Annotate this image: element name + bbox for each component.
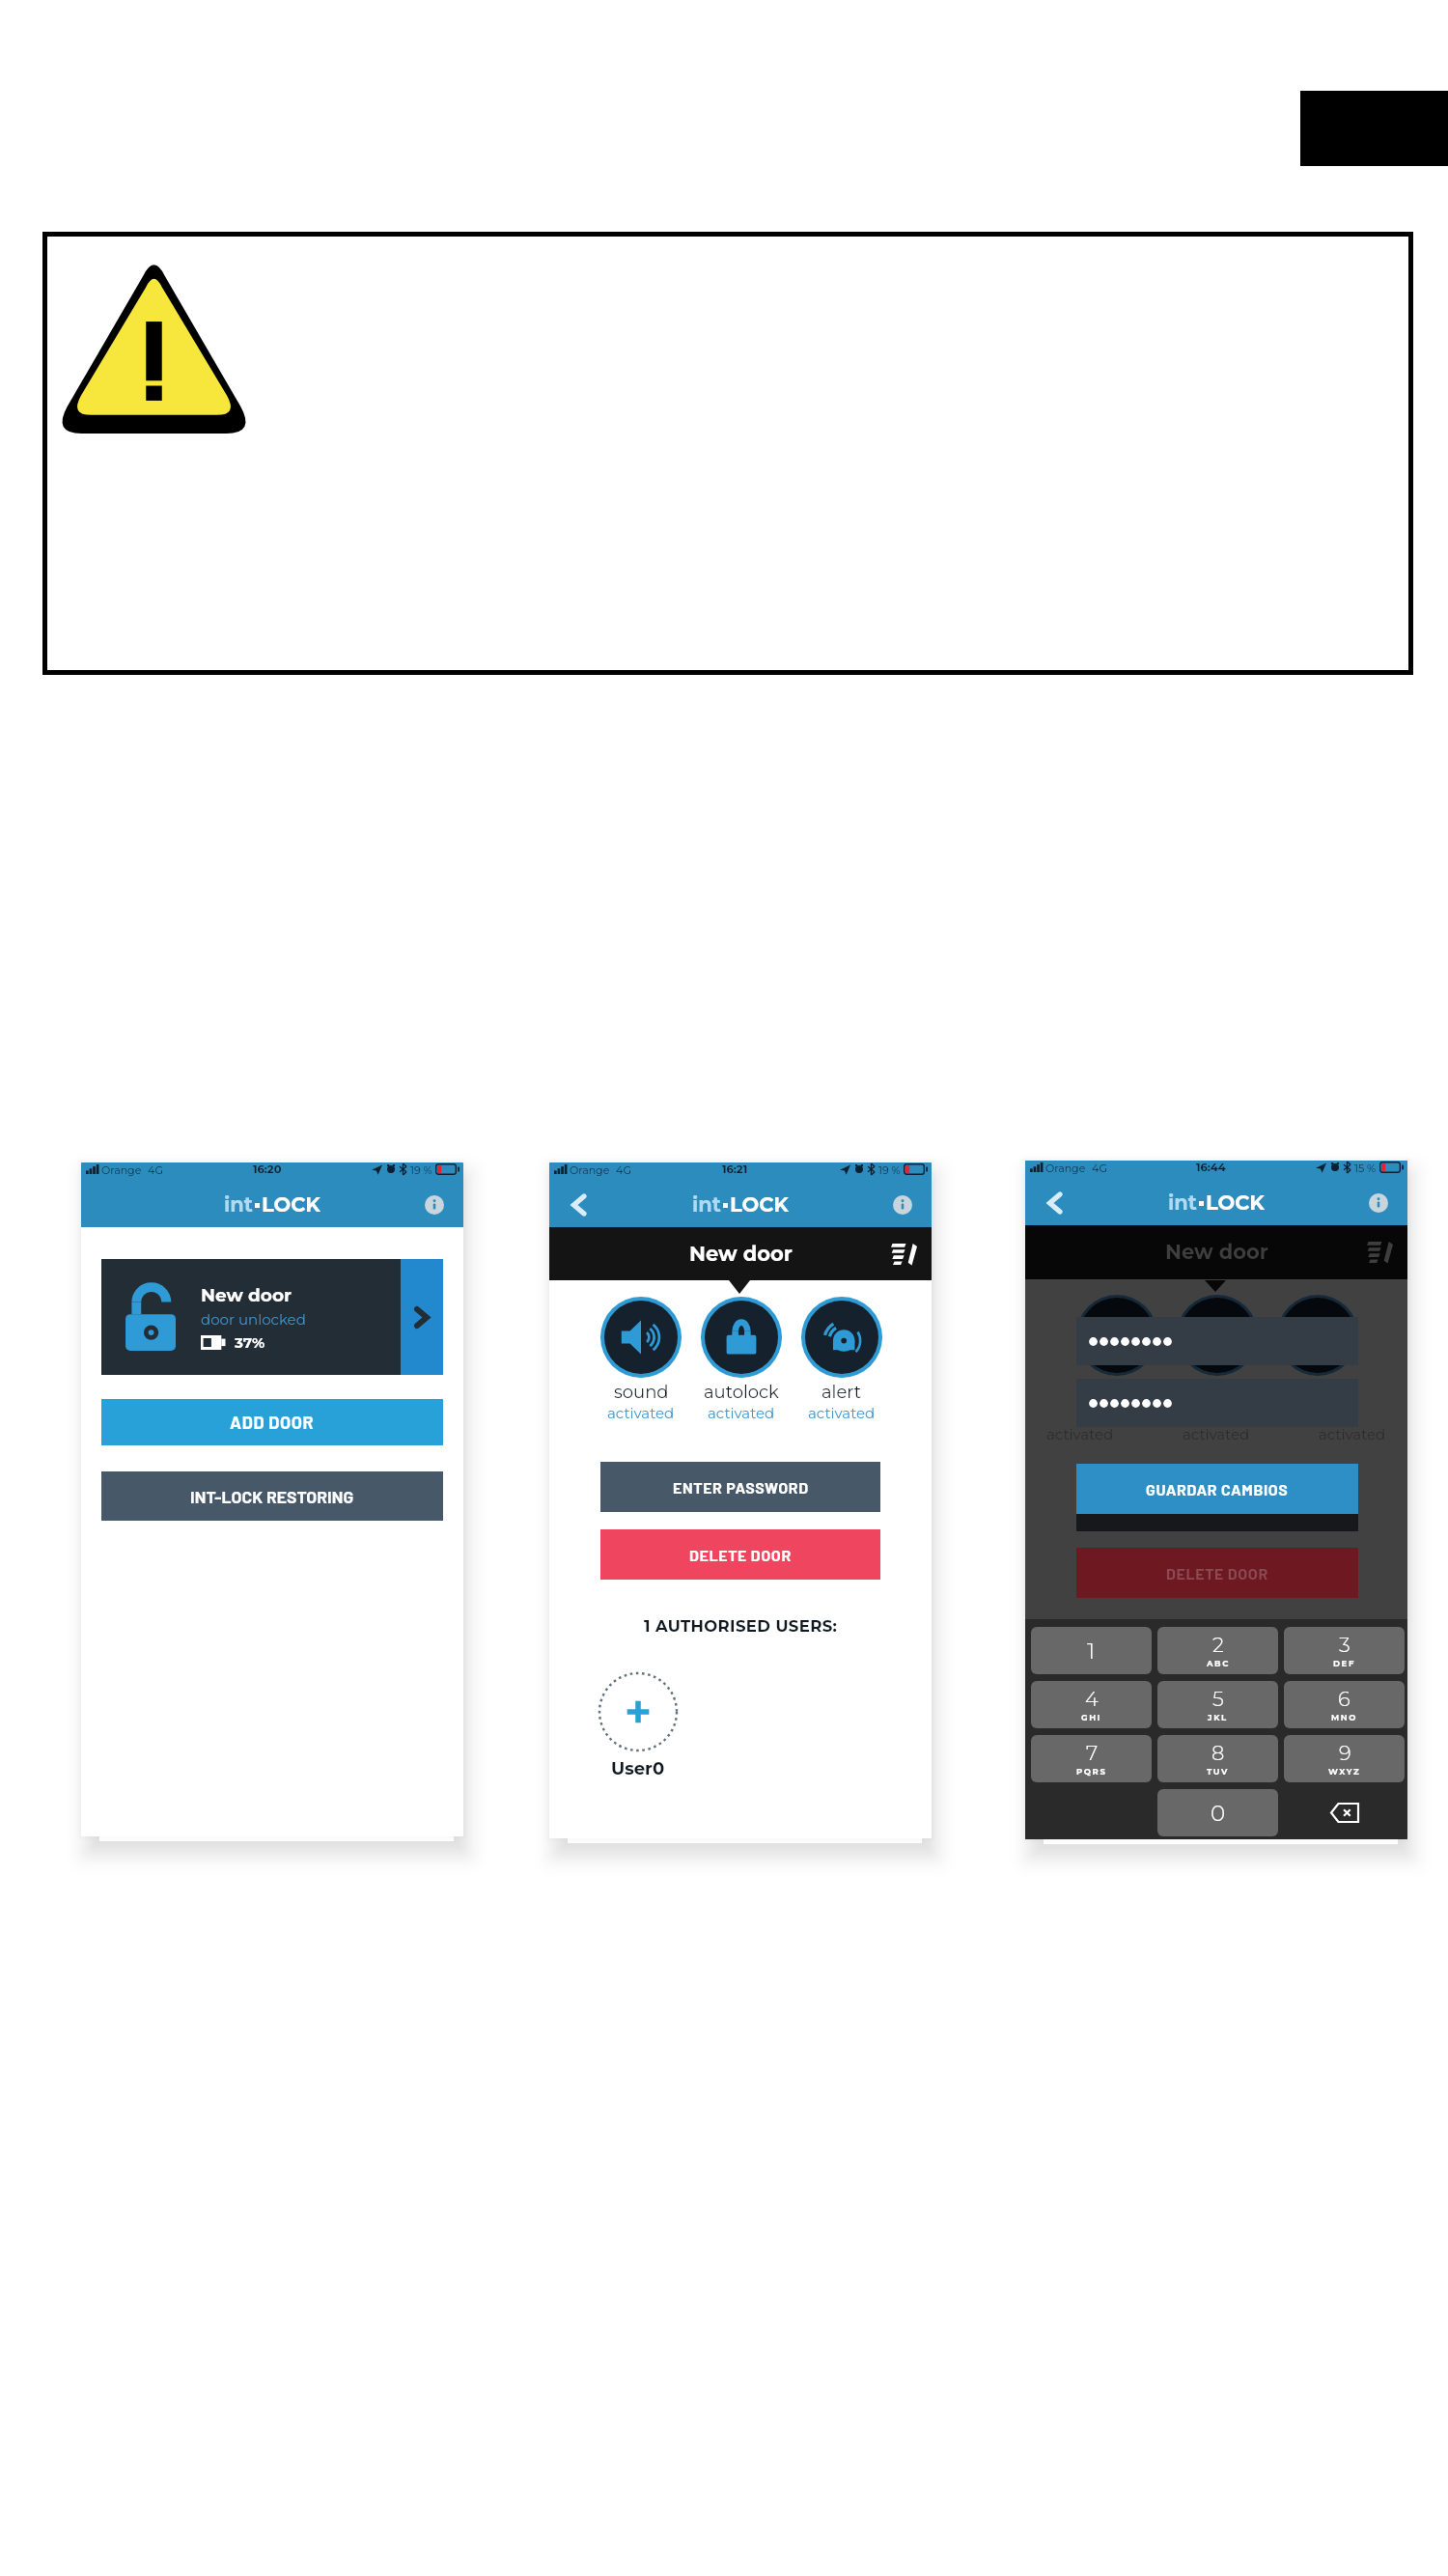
button[interactable]: 2 — [1157, 1627, 1278, 1674]
button[interactable]: GUARDAR CAMBIOS — [1076, 1464, 1358, 1514]
staticText: GUARDAR CAMBIOS — [1146, 1480, 1289, 1498]
button[interactable]: Edit — [888, 1239, 919, 1270]
staticText: New door — [689, 1242, 793, 1267]
staticText: Orange — [101, 1163, 142, 1176]
staticText: 0 — [1211, 1800, 1226, 1827]
staticText: 1 — [1087, 1638, 1096, 1665]
button[interactable]: 1 — [1031, 1627, 1152, 1674]
staticText: 5 — [1212, 1687, 1224, 1712]
button[interactable]: Add user — [598, 1671, 679, 1752]
button[interactable]: New door — [101, 1259, 443, 1375]
staticText: DELETE DOOR — [689, 1546, 792, 1564]
staticText: activated — [808, 1404, 876, 1421]
staticText: DELETE DOOR — [1166, 1564, 1268, 1582]
staticText: Orange — [570, 1163, 610, 1176]
button[interactable]: Edit — [1364, 1237, 1395, 1268]
staticText: ENTER PASSWORD — [673, 1478, 809, 1497]
button[interactable]: 0 — [1157, 1789, 1278, 1836]
staticText: 9 — [1339, 1741, 1351, 1766]
staticText: ABC — [1207, 1659, 1230, 1668]
button[interactable]: 4 — [1031, 1681, 1152, 1728]
staticText: activated — [1183, 1425, 1250, 1442]
staticText: LOCK — [1206, 1190, 1265, 1216]
button[interactable]: 3 — [1284, 1627, 1405, 1674]
staticText: MNO — [1331, 1713, 1357, 1722]
staticText: TUV — [1207, 1767, 1229, 1777]
staticText: LOCK — [730, 1192, 789, 1218]
button[interactable]: INT-LOCK RESTORING — [101, 1471, 443, 1521]
staticText: 19 % — [410, 1163, 432, 1176]
staticText: LOCK — [262, 1192, 320, 1218]
staticText: 15 % — [1354, 1162, 1377, 1174]
button[interactable]: ENTER PASSWORD — [600, 1462, 880, 1512]
staticText: 1 AUTHORISED USERS: — [644, 1616, 838, 1636]
staticText: 16:21 — [722, 1162, 748, 1176]
button[interactable]: ADD DOOR — [101, 1399, 443, 1445]
staticText: New door — [1165, 1240, 1268, 1265]
staticText: WXYZ — [1328, 1767, 1361, 1777]
staticText: User0 — [611, 1758, 665, 1779]
button[interactable]: autolock — [701, 1297, 782, 1421]
button[interactable]: 6 — [1284, 1681, 1405, 1728]
staticText: activated — [708, 1404, 775, 1421]
staticText: 4G — [1092, 1162, 1107, 1174]
button[interactable]: 7 — [1031, 1735, 1152, 1782]
button[interactable]: DELETE DOOR — [600, 1529, 880, 1580]
button[interactable]: 8 — [1157, 1735, 1278, 1782]
staticText: alert — [821, 1382, 862, 1403]
staticText: 6 — [1338, 1687, 1351, 1712]
button[interactable]: DELETE DOOR — [1076, 1548, 1358, 1598]
staticText: int — [224, 1192, 253, 1218]
staticText: int — [692, 1192, 721, 1218]
staticText: activated — [1046, 1425, 1114, 1442]
staticText: activated — [607, 1404, 675, 1421]
staticText: 16:44 — [1196, 1161, 1226, 1174]
button[interactable]: Back — [1038, 1187, 1071, 1219]
staticText: door unlocked — [201, 1310, 306, 1328]
button[interactable]: 5 — [1157, 1681, 1278, 1728]
staticText: INT-LOCK RESTORING — [190, 1486, 354, 1506]
staticText: PQRS — [1076, 1767, 1107, 1777]
staticText: 4G — [148, 1163, 163, 1176]
staticText: 4G — [616, 1163, 631, 1176]
staticText: 37% — [235, 1333, 265, 1351]
staticText: int — [1168, 1190, 1197, 1216]
staticText: JKL — [1208, 1713, 1228, 1722]
staticText: sound — [614, 1382, 669, 1403]
staticText: 7 — [1086, 1741, 1099, 1766]
button[interactable]: sound — [600, 1297, 682, 1421]
staticText: autolock — [704, 1382, 779, 1403]
staticText: GHI — [1081, 1713, 1102, 1722]
button[interactable]: Info — [421, 1191, 448, 1218]
button[interactable]: Back — [562, 1189, 595, 1221]
button[interactable]: Info — [1365, 1190, 1392, 1217]
staticText: DEF — [1333, 1659, 1355, 1668]
staticText: Orange — [1045, 1162, 1086, 1174]
staticText: 16:20 — [253, 1162, 282, 1176]
button[interactable]: Backspace — [1284, 1789, 1405, 1836]
button[interactable]: Info — [889, 1191, 916, 1218]
staticText: activated — [1319, 1425, 1386, 1442]
staticText: 19 % — [878, 1163, 901, 1176]
staticText: New door — [201, 1284, 292, 1306]
button[interactable]: 9 — [1284, 1735, 1405, 1782]
staticText: 3 — [1339, 1633, 1351, 1658]
button[interactable]: alert — [801, 1297, 882, 1421]
staticText: 2 — [1212, 1633, 1224, 1658]
staticText: 4 — [1085, 1687, 1099, 1712]
staticText: 8 — [1211, 1741, 1225, 1766]
staticText: ADD DOOR — [230, 1412, 315, 1433]
